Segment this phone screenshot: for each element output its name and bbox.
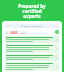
button[interactable]: More options	[5, 44, 59, 53]
button[interactable]: Recent	[10, 31, 18, 34]
button[interactable]: More options	[5, 36, 59, 43]
staticText: Prepared by certified experts	[3, 3, 61, 19]
staticText: Search documents	[24, 25, 43, 28]
button[interactable]: Search documents	[5, 24, 59, 28]
button[interactable]: All	[5, 31, 9, 34]
button[interactable]: More options	[5, 62, 59, 71]
button[interactable]: Shared	[19, 31, 27, 34]
button[interactable]: More options	[5, 54, 59, 61]
button[interactable]: Add document	[55, 30, 59, 34]
staticText: All	[6, 32, 8, 34]
staticText: Recent	[11, 32, 17, 34]
staticText: Shared	[20, 32, 26, 34]
